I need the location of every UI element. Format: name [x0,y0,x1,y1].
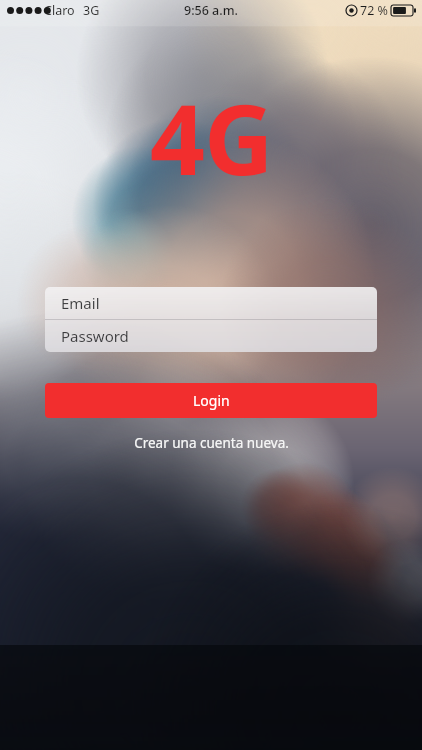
button[interactable]: Password [45,320,377,352]
staticText: Login [193,391,230,410]
button[interactable]: Crear una cuenta nueva. [45,431,377,455]
button[interactable]: Email [45,287,377,319]
staticText: Password [61,326,129,346]
staticText: 72 % [360,2,388,19]
staticText: Crear una cuenta nueva. [134,434,289,452]
staticText: 3G [83,2,100,19]
staticText: Claro [44,2,75,19]
staticText: Email [61,293,100,313]
staticText: 4G [150,72,273,203]
button[interactable]: Login [45,383,377,418]
staticText: 9:56 a.m. [184,2,238,19]
